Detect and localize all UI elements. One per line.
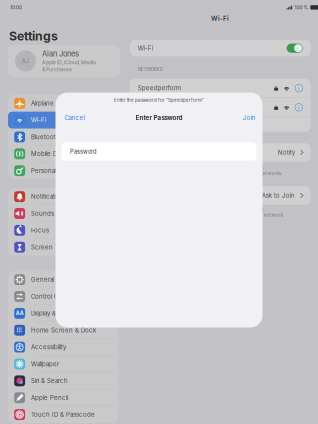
button[interactable]: Notify [130, 143, 311, 162]
button[interactable]: Ask to Join [130, 186, 311, 205]
staticText: Alan Jones [42, 49, 79, 58]
button[interactable]: Join [239, 112, 258, 123]
staticText: Siri & Search [31, 377, 68, 384]
staticText: Join [242, 114, 255, 121]
staticText: Enter Password [135, 114, 182, 121]
button[interactable]: Mobile Data [8, 145, 118, 162]
staticText: Control Centre [31, 293, 74, 300]
staticText: Settings [9, 28, 58, 43]
staticText: Apple ID, iCloud, Media [42, 59, 96, 65]
staticText: Speedperform [138, 84, 181, 92]
button[interactable]: General [8, 271, 118, 288]
staticText: Enter the password for “Speedperform” [114, 97, 204, 103]
staticText: Apple Pencil [31, 394, 68, 401]
staticText: Personal Hotspot [31, 167, 82, 174]
staticText: Known networks will be joined automatica… [138, 207, 284, 223]
button[interactable]: Accessibility [8, 339, 118, 356]
staticText: Wi-Fi [31, 116, 46, 124]
button[interactable]: Bluetooth [8, 128, 118, 145]
button[interactable]: AA [8, 305, 118, 322]
button[interactable]: AJ [8, 45, 120, 77]
button[interactable]: Speedperform [130, 79, 311, 97]
staticText: Cancel [64, 114, 84, 121]
staticText: Notifications [31, 193, 67, 200]
staticText: Sounds [31, 210, 54, 217]
staticText: Ask to Join [262, 192, 295, 199]
staticText: Accessibility [31, 343, 66, 351]
staticText: Wi-Fi [138, 44, 153, 52]
button[interactable]: Airplane [8, 95, 118, 112]
button[interactable]: Control Centre [8, 288, 118, 305]
staticText: Focus [31, 227, 49, 234]
staticText: AJ [21, 57, 29, 65]
staticText: Mobile Data [31, 150, 65, 157]
button[interactable]: Cancel [61, 112, 87, 123]
button[interactable]: Touch ID & Passcode [8, 406, 118, 423]
staticText: Display & Brightness [31, 310, 89, 317]
button[interactable]: Speedperform 5G [130, 98, 311, 117]
button[interactable]: Home Screen & Dock [8, 322, 118, 339]
button[interactable]: Wallpaper [8, 356, 118, 372]
button[interactable]: Notifications [8, 188, 118, 205]
staticText: Password [70, 148, 97, 155]
staticText: Home Screen & Dock [31, 326, 96, 334]
staticText: Known networks will be joined automatica… [138, 165, 282, 176]
staticText: AA [16, 310, 24, 317]
staticText: Bluetooth [31, 133, 60, 141]
button[interactable]: Screen Time [8, 239, 118, 256]
button[interactable]: Focus [8, 222, 118, 239]
staticText: Wi-Fi [211, 14, 229, 22]
staticText: General [31, 276, 54, 283]
staticText: Airplane [31, 99, 54, 107]
button[interactable]: Apple Pencil [8, 389, 118, 406]
staticText: 10:00 [10, 4, 22, 10]
staticText: Touch ID & Passcode [31, 411, 95, 418]
button[interactable]: Siri & Search [8, 372, 118, 389]
button[interactable]: Sounds [8, 205, 118, 222]
staticText: Screen Time [31, 243, 69, 251]
staticText: 100 % [294, 4, 308, 10]
staticText: Wallpaper [31, 360, 59, 368]
staticText: Notify [278, 149, 295, 156]
button[interactable]: Personal Hotspot [8, 162, 118, 179]
staticText: NETWORKS [138, 66, 163, 72]
button[interactable]: Wi-Fi [8, 112, 118, 129]
staticText: & Purchases [42, 66, 72, 73]
button[interactable]: Other… [130, 117, 311, 132]
